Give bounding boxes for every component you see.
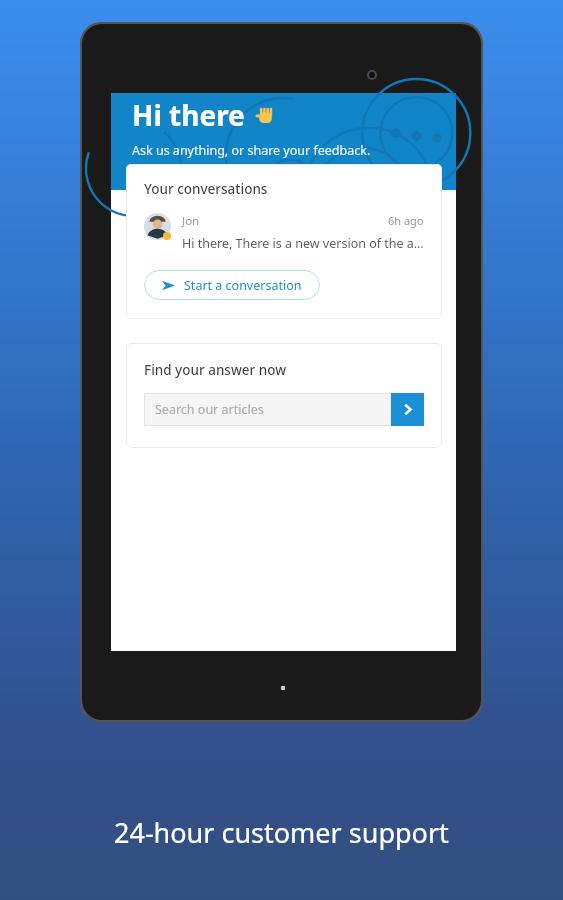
staticText: Jon [182,213,200,229]
staticText: 24-hour customer support [114,814,449,851]
button[interactable]: Start a conversation [144,270,320,300]
staticText: Ask us anything, or share your feedback. [132,142,371,159]
staticText: Hi there, There is a new version of the … [182,235,424,252]
staticText: Your conversations [144,180,268,198]
staticText: Hi there [132,96,245,134]
staticText: Find your answer now [144,361,287,379]
button[interactable]: Find your answer now [126,343,442,448]
button[interactable]: Search our articles [144,393,391,426]
button[interactable]: Search [391,393,424,426]
staticText: Start a conversation [184,277,302,294]
button[interactable]: Your conversations [126,164,442,319]
staticText: Search our articles [155,401,264,418]
button[interactable]: Jon [144,213,424,252]
staticText: 6h ago [388,213,424,228]
